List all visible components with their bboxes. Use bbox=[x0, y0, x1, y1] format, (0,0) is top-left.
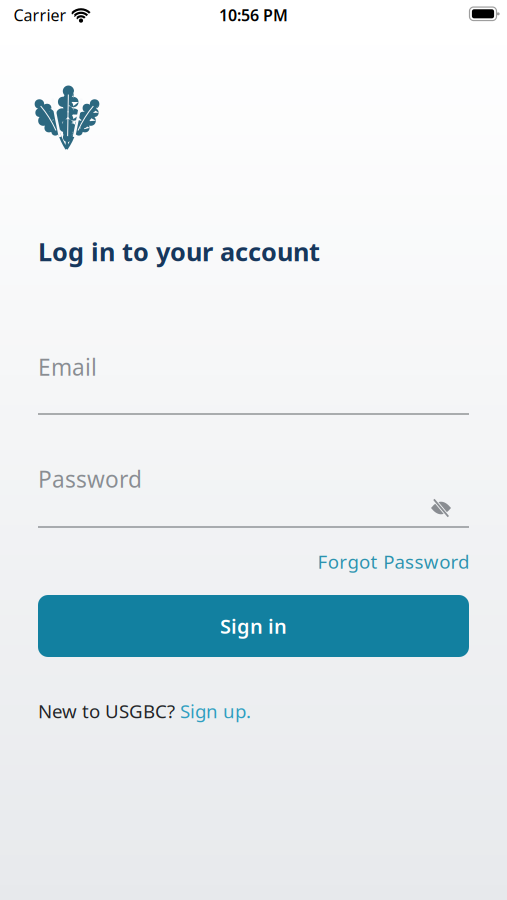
staticText: Email bbox=[38, 352, 97, 382]
button[interactable]: Password bbox=[38, 457, 469, 528]
button[interactable]: Sign up. bbox=[180, 699, 251, 723]
staticText: Forgot Password bbox=[317, 549, 469, 574]
button[interactable]: Forgot Password bbox=[317, 549, 469, 574]
button[interactable]: Sign in bbox=[38, 595, 469, 657]
staticText: Sign in bbox=[220, 613, 287, 639]
button[interactable]: Email bbox=[38, 345, 469, 415]
staticText: New to USGBC? bbox=[38, 699, 180, 723]
staticText: Password bbox=[38, 464, 142, 494]
staticText: Sign up. bbox=[180, 699, 251, 723]
staticText: 10:56 PM bbox=[219, 4, 288, 26]
staticText: Carrier bbox=[13, 4, 66, 26]
button[interactable]: Show password bbox=[430, 499, 451, 517]
staticText: Log in to your account bbox=[38, 235, 320, 268]
